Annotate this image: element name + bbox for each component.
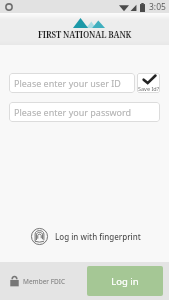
staticText: Member FDIC (23, 277, 66, 286)
button[interactable]: Save Id (137, 73, 160, 93)
button[interactable]: Please enter your password (9, 102, 160, 122)
staticText: Log in with fingerprint (55, 231, 141, 242)
button[interactable]: Log in (87, 266, 163, 296)
staticText: 3:05 (149, 1, 166, 13)
staticText: Please enter your user ID (14, 77, 121, 89)
staticText: Save Id? (138, 85, 160, 92)
button[interactable]: Log in with fingerprint (31, 228, 169, 245)
button[interactable]: Please enter your user ID (9, 73, 135, 93)
staticText: Please enter your password (14, 106, 132, 118)
staticText: Log in (111, 275, 139, 288)
staticText: FIRST NATIONAL BANK (38, 29, 132, 40)
